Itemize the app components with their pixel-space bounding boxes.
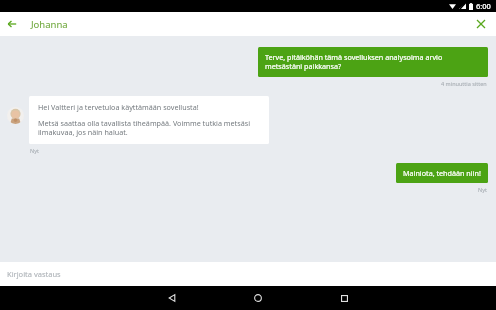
staticText: 4 minuuttia sitten [441, 80, 487, 87]
button[interactable]: Back [0, 12, 24, 36]
staticText: Metsä saattaa olla tavallista tiheämpää.… [38, 118, 260, 138]
button[interactable]: Home [246, 286, 270, 310]
button[interactable]: Back [160, 286, 184, 310]
button[interactable]: Recent apps [332, 286, 356, 310]
button[interactable]: Kirjoita vastaus [0, 262, 496, 286]
staticText: Johanna [31, 18, 68, 31]
button[interactable]: Close [469, 12, 493, 36]
staticText: 6:00 [476, 1, 491, 11]
staticText: Nyt [478, 186, 487, 193]
staticText: Hei Valtteri ja tervetuloa käyttämään so… [38, 102, 199, 112]
button[interactable]: Mainiota, tehdään niin! [396, 163, 488, 183]
button[interactable]: Terve, pitäiköhän tämä sovelluksen analy… [258, 47, 488, 77]
staticText: Mainiota, tehdään niin! [403, 168, 481, 178]
staticText: Nyt [30, 147, 39, 154]
staticText: Kirjoita vastaus [7, 269, 61, 279]
staticText: Terve, pitäiköhän tämä sovelluksen analy… [265, 52, 481, 72]
button[interactable]: Hei Valtteri ja tervetuloa käyttämään so… [29, 96, 269, 144]
